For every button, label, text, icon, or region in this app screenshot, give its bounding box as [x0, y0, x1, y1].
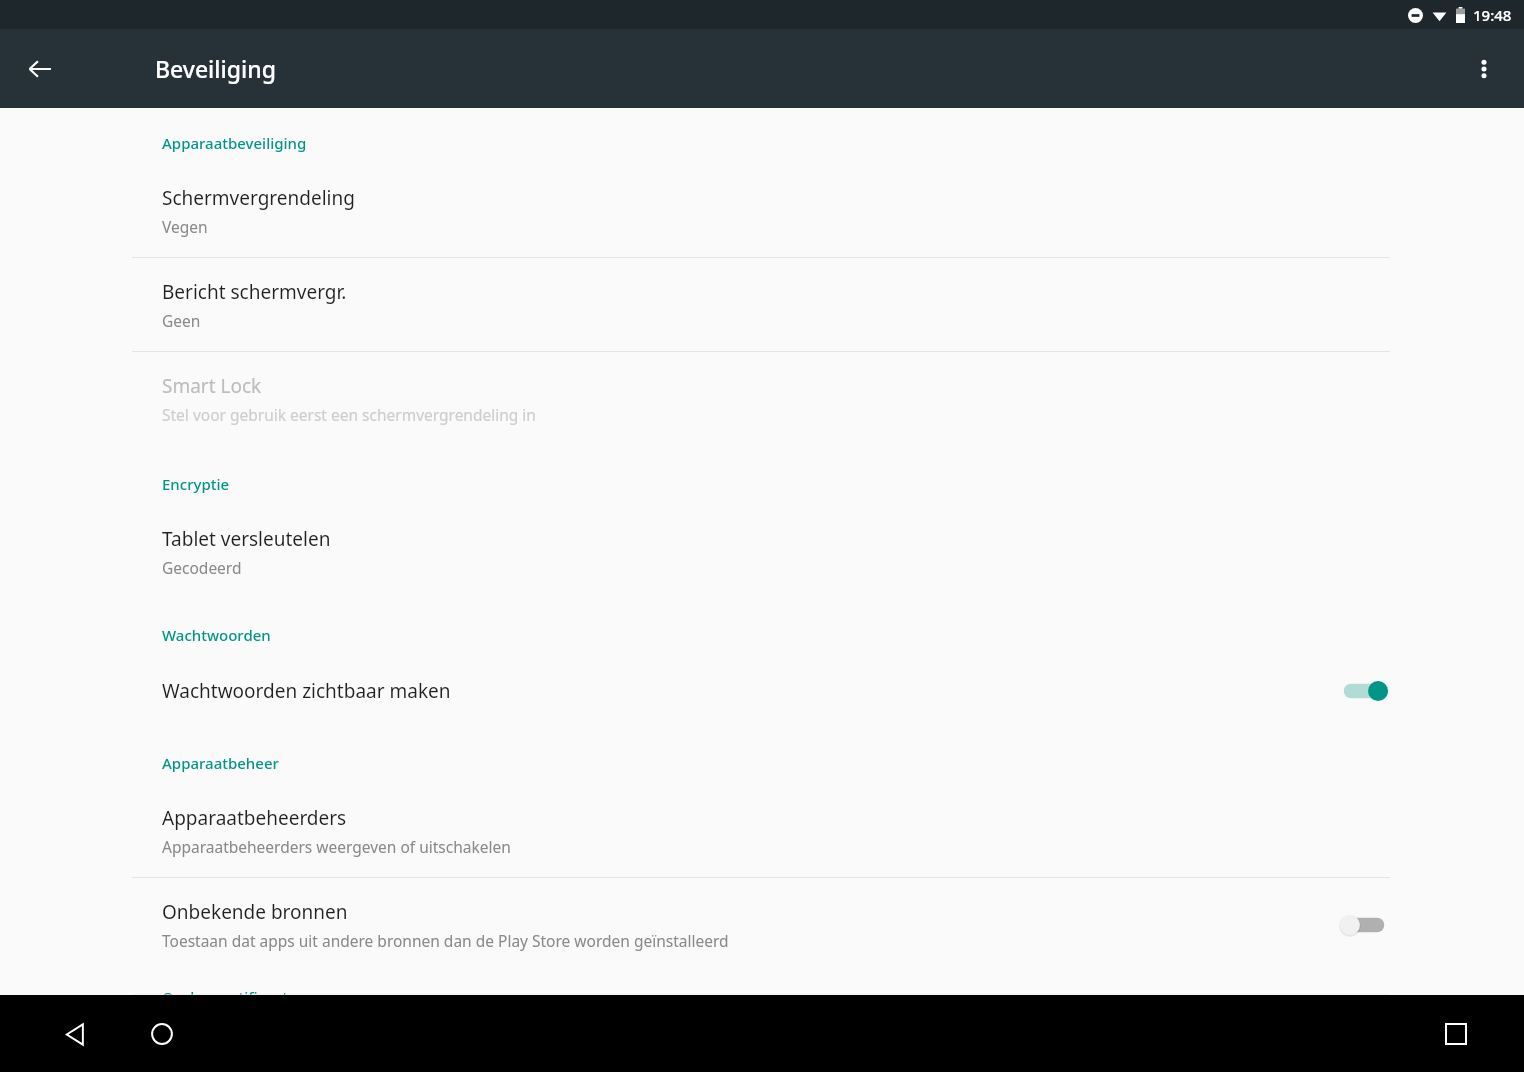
staticText: Encryptie	[162, 474, 230, 494]
button[interactable]: Aan	[1338, 674, 1390, 708]
button[interactable]: Terug	[45, 1004, 105, 1064]
staticText: Vegen	[162, 216, 208, 237]
staticText: Tablet versleutelen	[162, 526, 331, 552]
staticText: Toestaan dat apps uit andere bronnen dan…	[162, 930, 729, 951]
staticText: 19:48	[1473, 5, 1512, 25]
staticText: Apparaatbeheerders	[162, 805, 347, 831]
button[interactable]: Tablet versleutelen	[0, 505, 1524, 598]
button[interactable]: Wachtwoorden zichtbaar maken	[0, 656, 1524, 726]
staticText: Apparaatbeheer	[162, 753, 279, 773]
staticText: Schermvergrendeling	[162, 185, 355, 211]
staticText: Bericht schermvergr.	[162, 279, 347, 305]
staticText: Smart Lock	[162, 373, 262, 399]
staticText: Geen	[162, 310, 201, 331]
staticText: Wachtwoorden	[162, 625, 271, 645]
staticText: Beveiliging	[155, 53, 276, 84]
button[interactable]: Startscherm	[132, 1004, 192, 1064]
staticText: Apparaatbeheerders weergeven of uitschak…	[162, 836, 511, 857]
button[interactable]: Onbekende bronnen	[0, 878, 1524, 971]
button[interactable]: Schermvergrendeling	[0, 164, 1524, 257]
button[interactable]: Bericht schermvergr.	[0, 258, 1524, 351]
button[interactable]: Uit	[1338, 908, 1390, 942]
staticText: Stel voor gebruik eerst een schermvergre…	[162, 404, 536, 425]
button: Smart Lock	[0, 352, 1524, 445]
button[interactable]: Terug	[16, 45, 64, 93]
button[interactable]: Meer opties	[1460, 45, 1508, 93]
staticText: Onbekende bronnen	[162, 899, 348, 925]
staticText: Opslag certificaatgegevens	[162, 987, 357, 995]
button[interactable]: Recente apps	[1426, 1004, 1486, 1064]
button[interactable]: Apparaatbeheerders	[0, 784, 1524, 877]
staticText: Wachtwoorden zichtbaar maken	[162, 678, 451, 704]
staticText: Apparaatbeveiliging	[162, 133, 307, 153]
staticText: Gecodeerd	[162, 557, 242, 578]
